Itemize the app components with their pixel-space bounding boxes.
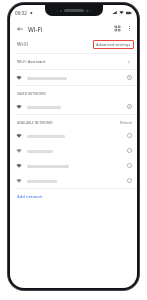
button[interactable]: Wi-Fi network bbox=[10, 70, 137, 85]
staticText: Advanced settings bbox=[96, 42, 131, 47]
button[interactable]: Wi-Fi network bbox=[10, 158, 137, 173]
button[interactable]: Wi-Fi network bbox=[10, 128, 137, 143]
staticText: Wi-Fi bbox=[17, 41, 28, 48]
button[interactable]: Add network bbox=[10, 189, 137, 204]
button[interactable]: Scan QR code bbox=[111, 22, 124, 35]
button[interactable]: More options bbox=[124, 23, 135, 34]
staticText: 09:32 bbox=[15, 10, 27, 16]
button[interactable]: Refresh bbox=[120, 120, 132, 124]
button[interactable]: Advanced settings bbox=[93, 40, 134, 49]
staticText: Wi-Fi Assistant bbox=[17, 59, 46, 65]
staticText: Refresh bbox=[120, 120, 132, 124]
button[interactable]: Wi-Fi network bbox=[10, 173, 137, 188]
button[interactable]: Back bbox=[13, 22, 26, 35]
button[interactable]: Wi-Fi Assistant bbox=[10, 54, 137, 69]
staticText: Add network bbox=[17, 194, 43, 200]
staticText: Wi-Fi bbox=[28, 25, 43, 33]
button[interactable]: Wi-Fi network bbox=[10, 143, 137, 158]
button[interactable]: Wi-Fi bbox=[10, 36, 137, 53]
staticText: SAVED NETWORKS bbox=[17, 91, 46, 95]
staticText: AVAILABLE NETWORKS bbox=[17, 120, 53, 124]
button[interactable]: Wi-Fi network bbox=[10, 99, 137, 114]
